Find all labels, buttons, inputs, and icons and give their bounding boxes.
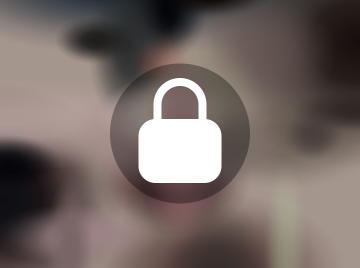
button[interactable]: Locked (0, 0, 360, 268)
